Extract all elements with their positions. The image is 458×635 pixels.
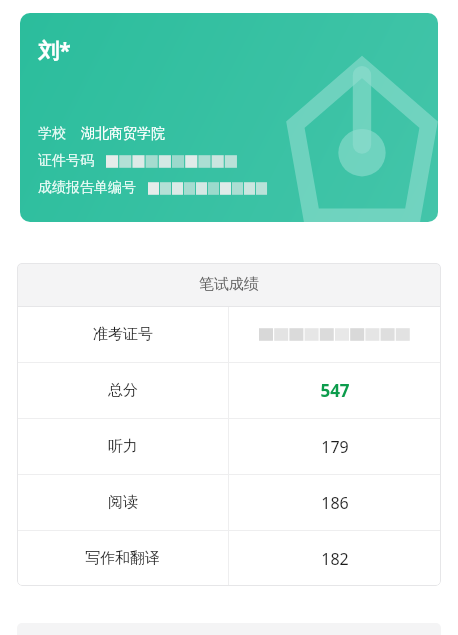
- staticText: 成绩报告单编号: [38, 179, 136, 197]
- staticText: 刘*: [38, 36, 71, 65]
- button[interactable]: 笔试成绩: [17, 263, 441, 306]
- staticText: 笔试成绩: [199, 275, 259, 294]
- staticText: 阅读: [108, 493, 138, 512]
- staticText: 写作和翻译: [85, 549, 160, 568]
- staticText: 证件号码: [38, 152, 94, 170]
- button[interactable]: 写作和翻译: [17, 531, 441, 586]
- staticText: 总分: [108, 381, 138, 400]
- staticText: 186: [321, 492, 349, 514]
- staticText: 听力: [108, 437, 138, 456]
- button[interactable]: 听力: [17, 419, 441, 474]
- staticText: 学校: [38, 125, 66, 143]
- button[interactable]: 总分: [17, 363, 441, 418]
- button[interactable]: 准考证号: [17, 307, 441, 362]
- staticText: 湖北商贸学院: [81, 125, 165, 143]
- staticText: 182: [321, 548, 349, 570]
- button[interactable]: 刘*: [20, 13, 438, 222]
- staticText: 准考证号: [93, 325, 153, 344]
- button[interactable]: 阅读: [17, 475, 441, 530]
- staticText: 547: [320, 379, 350, 402]
- staticText: 179: [321, 436, 349, 458]
